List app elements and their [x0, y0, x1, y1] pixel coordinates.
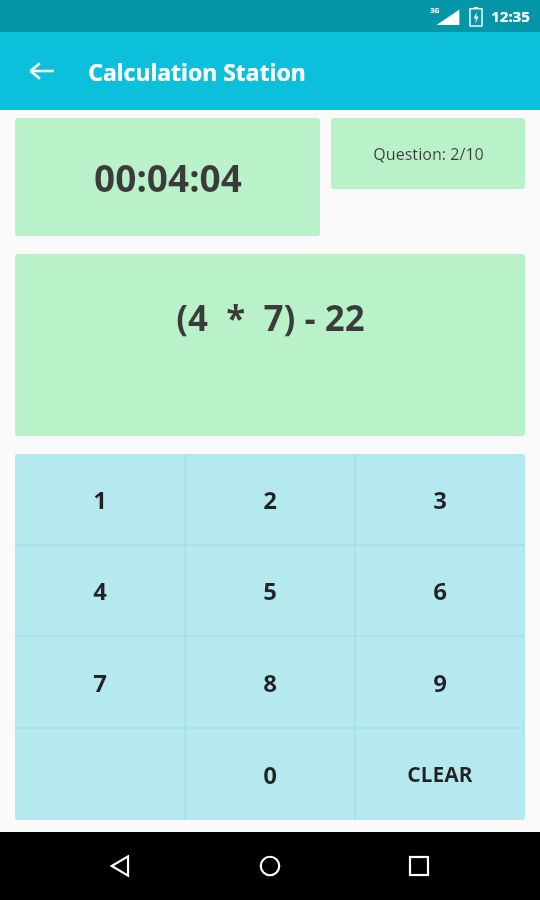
button[interactable]: CLEAR [355, 728, 525, 820]
button[interactable]: 3 [355, 454, 525, 545]
button[interactable]: 1 [15, 454, 185, 545]
button[interactable]: 2 [185, 454, 355, 545]
button[interactable]: 00:04:04 [15, 118, 320, 236]
staticText: Question: 2/10 [373, 143, 484, 165]
button[interactable]: 9 [355, 636, 525, 728]
staticText: 7 [93, 666, 107, 699]
staticText: 3G [430, 6, 440, 16]
button[interactable]: Home [242, 838, 298, 894]
button[interactable]: 6 [355, 545, 525, 636]
button[interactable]: 4 [15, 545, 185, 636]
staticText: CLEAR [407, 760, 473, 789]
button[interactable]: Recent apps [391, 838, 447, 894]
staticText: 9 [433, 666, 447, 699]
staticText: 4 [93, 574, 107, 607]
button[interactable]: Back [14, 43, 70, 99]
staticText: 1 [93, 483, 107, 516]
staticText: 5 [263, 574, 277, 607]
button[interactable]: Back [93, 838, 149, 894]
staticText: (4 * 7) - 22 [176, 294, 365, 342]
button[interactable]: Question: 2/10 [331, 118, 525, 189]
button[interactable]: 7 [15, 636, 185, 728]
staticText: Calculation Station [88, 56, 306, 87]
staticText: 0 [263, 758, 277, 791]
staticText: 8 [263, 666, 277, 699]
staticText: 3 [433, 483, 447, 516]
staticText: 2 [263, 483, 277, 516]
button[interactable]: 8 [185, 636, 355, 728]
staticText: 00:04:04 [94, 152, 242, 202]
staticText: 12:35 [491, 6, 530, 26]
button[interactable]: 5 [185, 545, 355, 636]
staticText: 6 [433, 574, 447, 607]
button[interactable]: 0 [185, 728, 355, 820]
button[interactable]: (4 * 7) - 22 [15, 254, 525, 436]
